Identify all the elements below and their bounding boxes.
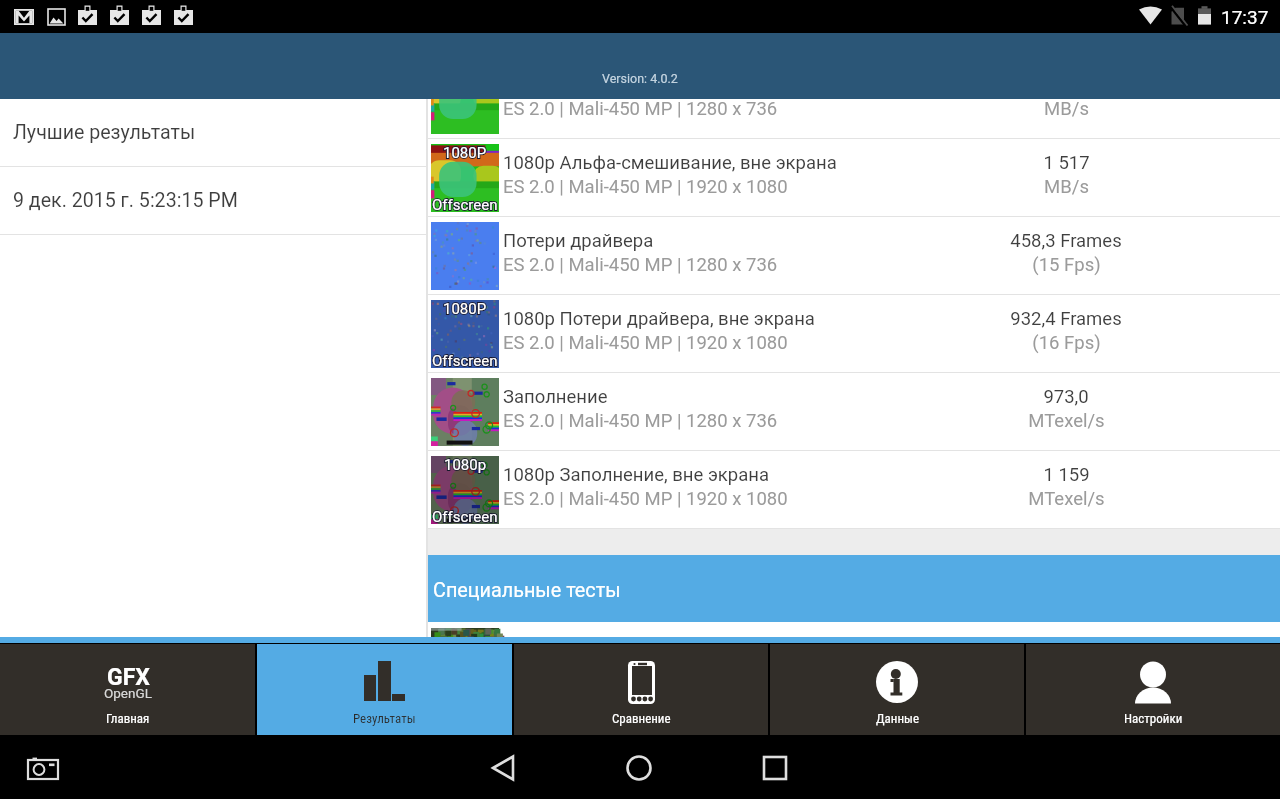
staticText: Offscreen bbox=[432, 352, 498, 368]
staticText: Заполнение bbox=[503, 386, 608, 408]
staticText: 9 дек. 2015 г. 5:23:15 PM bbox=[13, 189, 238, 212]
button[interactable]: Settings bbox=[1026, 644, 1280, 735]
staticText: Version: 4.0.2 bbox=[602, 71, 678, 86]
staticText: MB/s bbox=[1044, 99, 1089, 120]
staticText: Offscreen bbox=[432, 508, 498, 524]
button[interactable]: 9 дек. 2015 г. 5:23:15 PM bbox=[0, 167, 426, 235]
staticText: MB/s bbox=[1044, 176, 1089, 198]
button[interactable]: 1080p bbox=[428, 451, 1280, 528]
button[interactable]: Data bbox=[770, 644, 1024, 735]
staticText: 1 159 bbox=[1043, 464, 1090, 486]
staticText: 1080P bbox=[443, 300, 487, 318]
staticText: ES 2.0 | Mali-450 MP | 1920 x 1080 bbox=[503, 176, 788, 198]
staticText: 1080P bbox=[443, 144, 487, 162]
button[interactable]: 1080P bbox=[428, 295, 1280, 372]
button[interactable]: 1080p Альфа-смешивание bbox=[428, 99, 1280, 138]
staticText: Специальные тесты bbox=[433, 579, 621, 602]
staticText: ES 2.0 | Mali-450 MP | 1280 x 736 bbox=[503, 99, 778, 120]
staticText: Offscreen bbox=[432, 196, 498, 212]
staticText: 1080p Заполнение, вне экрана bbox=[503, 464, 770, 486]
button[interactable]: 1080P bbox=[428, 139, 1280, 216]
staticText: MTexel/s bbox=[1028, 410, 1105, 432]
staticText: 1080p Альфа-смешивание, вне экрана bbox=[503, 152, 837, 174]
staticText: 973,0 bbox=[1043, 386, 1089, 408]
staticText: Данные bbox=[876, 711, 919, 726]
staticText: Лучшие результаты bbox=[13, 121, 196, 144]
staticText: Настройки bbox=[1124, 711, 1183, 726]
other: Compare bbox=[628, 661, 655, 704]
other: Settings bbox=[1135, 661, 1171, 703]
staticText: 1080p Потери драйвера, вне экрана bbox=[503, 308, 815, 330]
button[interactable]: Специальные тесты bbox=[428, 555, 1280, 622]
other: Results bbox=[364, 661, 405, 701]
staticText: 458,3 Frames bbox=[1010, 230, 1122, 252]
button[interactable]: Лучшие результаты bbox=[0, 99, 426, 167]
staticText: Offscreen bbox=[432, 352, 498, 368]
staticText: Главная bbox=[106, 711, 150, 726]
button[interactable]: Compare bbox=[514, 644, 768, 735]
staticText: 1 517 bbox=[1043, 152, 1090, 174]
button[interactable]: GFX bbox=[0, 644, 255, 735]
button[interactable]: Потери драйвера bbox=[428, 217, 1280, 294]
staticText: 932,4 Frames bbox=[1010, 308, 1122, 330]
staticText: 1080p bbox=[444, 456, 487, 474]
staticText: Потери драйвера bbox=[503, 230, 654, 252]
staticText: GFX bbox=[107, 664, 150, 691]
staticText: (15 Fps) bbox=[1032, 254, 1101, 276]
staticText: Результаты bbox=[353, 711, 416, 726]
staticText: ES 2.0 | Mali-450 MP | 1280 x 736 bbox=[503, 410, 778, 432]
staticText: ES 2.0 | Mali-450 MP | 1280 x 736 bbox=[503, 254, 778, 276]
staticText: 1080P bbox=[443, 144, 487, 162]
button[interactable]: Results bbox=[257, 644, 512, 735]
other: Data bbox=[876, 661, 918, 703]
staticText: (16 Fps) bbox=[1032, 332, 1101, 354]
staticText: Offscreen bbox=[432, 508, 498, 524]
staticText: Сравнение bbox=[612, 711, 671, 726]
staticText: MTexel/s bbox=[1028, 488, 1105, 510]
staticText: 1080P bbox=[443, 300, 487, 318]
staticText: OpenGL bbox=[104, 685, 152, 701]
staticText: 17:37 bbox=[1221, 6, 1269, 28]
staticText: 1080p bbox=[444, 456, 487, 474]
button[interactable]: Заполнение bbox=[428, 373, 1280, 450]
staticText: ES 2.0 | Mali-450 MP | 1920 x 1080 bbox=[503, 332, 788, 354]
staticText: Offscreen bbox=[432, 196, 498, 212]
staticText: ES 2.0 | Mali-450 MP | 1920 x 1080 bbox=[503, 488, 788, 510]
